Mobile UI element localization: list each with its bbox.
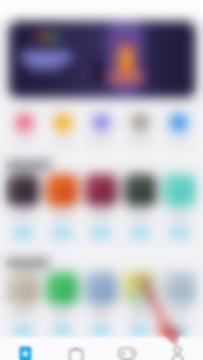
button[interactable]: Category 3 xyxy=(82,114,121,142)
button[interactable]: App 5 xyxy=(163,174,195,238)
button[interactable]: App 8 xyxy=(85,272,117,336)
button[interactable]: App 3 xyxy=(85,174,117,238)
button[interactable]: Today xyxy=(0,337,51,360)
button[interactable]: App 1 xyxy=(7,174,39,238)
button[interactable]: Featured app banner xyxy=(9,21,195,98)
button[interactable]: Account xyxy=(152,337,203,360)
button[interactable]: Category 5 xyxy=(159,114,198,142)
button[interactable]: App 7 xyxy=(46,272,78,336)
button[interactable]: Category 4 xyxy=(121,114,159,142)
button[interactable]: Category 1 xyxy=(5,114,44,142)
button[interactable]: App 4 xyxy=(124,174,156,238)
button[interactable]: App 6 xyxy=(7,272,39,336)
button[interactable]: App 2 xyxy=(46,174,78,238)
button[interactable]: Arcade xyxy=(101,337,152,360)
button[interactable]: App 9 xyxy=(124,272,156,336)
button[interactable]: Category 2 xyxy=(44,114,82,142)
button[interactable]: App 10 xyxy=(163,272,195,336)
button[interactable]: Apps xyxy=(51,337,102,360)
